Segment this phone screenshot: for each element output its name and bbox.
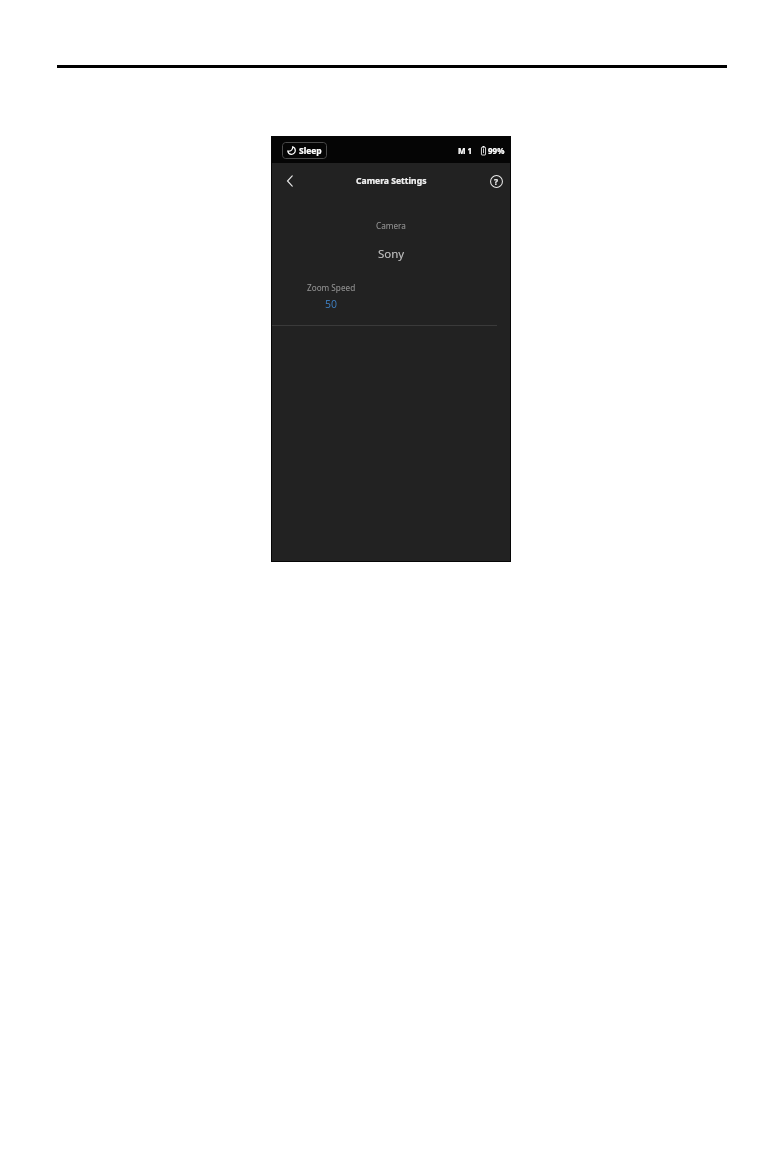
staticText: Sleep: [299, 145, 322, 157]
button[interactable]: Sleep: [282, 142, 327, 159]
staticText: Camera: [272, 220, 510, 231]
staticText: 99%: [488, 145, 505, 156]
staticText: M 1: [458, 145, 473, 156]
staticText: Camera Settings: [356, 175, 427, 187]
button[interactable]: Back: [279, 170, 301, 192]
staticText: Sony: [272, 246, 510, 262]
staticText: 50: [325, 297, 338, 311]
staticText: Zoom Speed: [307, 282, 356, 293]
button[interactable]: Help: [486, 171, 506, 191]
staticText: ?: [494, 176, 499, 188]
